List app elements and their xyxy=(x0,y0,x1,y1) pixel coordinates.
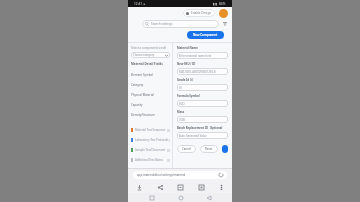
staticText: Additional Test Notes xyxy=(135,158,163,162)
button[interactable]: Reset xyxy=(200,145,218,153)
staticText: Enable Design xyxy=(191,11,212,15)
button[interactable]: Account xyxy=(219,9,228,18)
button[interactable]: Save xyxy=(222,145,228,153)
staticText: Category xyxy=(131,83,144,87)
other: Reload xyxy=(219,173,223,177)
button[interactable]: Material Test Sequence xyxy=(131,125,170,135)
staticText: Density/Structure xyxy=(131,113,155,117)
staticText: Material Detail Fields Na... xyxy=(131,62,170,66)
button[interactable]: Category xyxy=(131,80,170,90)
button[interactable]: Filter xyxy=(222,21,228,27)
staticText: 01 xyxy=(179,86,183,90)
button[interactable]: 1000 xyxy=(177,116,228,123)
button[interactable]: Auto Generated Value xyxy=(177,132,228,139)
staticText: Material Name xyxy=(177,46,198,50)
staticText: Grade Id (i) xyxy=(177,78,194,82)
button[interactable]: 01 xyxy=(177,84,228,91)
button[interactable]: H2O xyxy=(177,100,228,107)
staticText: Batch Replacement ID Optional xyxy=(177,126,223,130)
staticText: 12:41 ▸ xyxy=(134,2,146,6)
button[interactable]: More options xyxy=(216,182,226,192)
button[interactable]: Physical Material xyxy=(131,90,170,100)
button[interactable]: MAT-0001-ABC0293847293-B xyxy=(177,68,228,75)
button[interactable]: Recents xyxy=(147,193,156,202)
staticText: 1000 xyxy=(179,118,186,122)
staticText: Capacity xyxy=(131,103,143,107)
button[interactable]: Laboratory Test Protocols xyxy=(131,135,170,145)
staticText: H2O xyxy=(179,102,185,106)
button[interactable]: Enter material name here xyxy=(177,52,228,59)
staticText: New SKU / ID xyxy=(177,62,196,66)
staticText: New Component xyxy=(193,33,218,37)
staticText: Sample Test Document xyxy=(135,148,166,152)
staticText: Reset xyxy=(205,147,213,151)
staticText: MAT-0001-ABC0293847293-B xyxy=(179,70,216,74)
button[interactable]: Back xyxy=(204,193,213,202)
staticText: Physical Material xyxy=(131,93,154,97)
staticText: Material Test Sequence xyxy=(135,128,166,132)
button[interactable]: Bookmark xyxy=(175,182,185,192)
staticText: Select a component to edit xyxy=(131,46,167,50)
staticText: Laboratory Test Protocols xyxy=(135,138,169,142)
button[interactable]: Download xyxy=(134,182,144,192)
button[interactable]: Cancel xyxy=(177,145,196,153)
staticText: Element Symbol xyxy=(131,73,153,77)
button[interactable]: Additional Test Notes xyxy=(131,155,170,165)
button[interactable]: Capacity xyxy=(131,100,170,110)
button[interactable]: Home xyxy=(176,193,185,202)
staticText: Search settings xyxy=(151,22,173,26)
button[interactable]: Enable Design xyxy=(183,9,215,17)
button[interactable]: app.materialdb.io/settings/material xyxy=(133,171,227,179)
button[interactable]: New Component xyxy=(187,31,224,39)
button[interactable]: Element Symbol xyxy=(131,70,170,80)
button[interactable]: Search settings xyxy=(142,20,219,28)
button[interactable]: Share xyxy=(155,182,165,192)
staticText: Enter material name here xyxy=(179,54,212,58)
staticText: ▮ ▮ 84% xyxy=(213,2,226,6)
button[interactable]: Choose category xyxy=(131,52,170,58)
button[interactable]: Tabs xyxy=(196,182,206,192)
staticText: Mass xyxy=(177,110,185,114)
staticText: Formula Symbol xyxy=(177,94,200,98)
staticText: Auto Generated Value xyxy=(179,134,207,138)
button[interactable]: Sample Test Document xyxy=(131,145,170,155)
staticText: Cancel xyxy=(182,147,191,151)
staticText: app.materialdb.io/settings/material xyxy=(137,173,186,177)
button[interactable]: Density/Structure xyxy=(131,110,170,120)
staticText: Choose category xyxy=(133,53,155,57)
